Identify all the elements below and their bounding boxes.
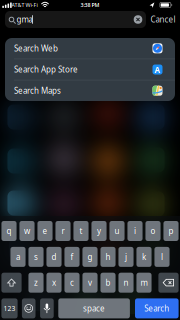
button[interactable]: m xyxy=(136,273,151,293)
button[interactable]: a xyxy=(10,247,26,267)
button[interactable]: Search App Store xyxy=(5,59,175,80)
button[interactable]: d xyxy=(46,247,62,267)
staticText: gma xyxy=(16,14,32,25)
staticText: k xyxy=(142,252,146,262)
staticText: o xyxy=(150,226,155,236)
staticText: q xyxy=(6,226,11,236)
button[interactable]: q xyxy=(1,221,17,241)
staticText: Search xyxy=(144,303,169,314)
staticText: f xyxy=(70,252,73,262)
button[interactable]: b xyxy=(100,273,116,293)
staticText: u xyxy=(114,226,119,236)
button[interactable]: j xyxy=(118,247,134,267)
staticText: h xyxy=(105,252,110,262)
button[interactable]: Search Web xyxy=(5,38,175,58)
staticText: p xyxy=(168,226,173,236)
staticText: a xyxy=(16,252,20,262)
staticText: b xyxy=(105,277,110,288)
button[interactable]: t xyxy=(73,221,89,241)
button[interactable]: 123 xyxy=(1,298,18,318)
staticText: Cancel xyxy=(150,14,175,25)
staticText: w xyxy=(24,226,30,236)
button[interactable]: c xyxy=(64,273,80,293)
staticText: A xyxy=(154,64,160,75)
staticText: space xyxy=(83,303,105,314)
button[interactable]: h xyxy=(100,247,116,267)
staticText: i xyxy=(134,226,136,236)
staticText: y xyxy=(97,226,101,236)
button[interactable]: Dictate xyxy=(40,298,54,318)
button[interactable]: v xyxy=(82,273,98,293)
button[interactable]: p xyxy=(163,221,179,241)
button[interactable]: s xyxy=(28,247,44,267)
button[interactable]: Delete xyxy=(158,273,179,293)
button[interactable]: x xyxy=(46,273,62,293)
button[interactable]: z xyxy=(28,273,44,293)
staticText: s xyxy=(34,252,38,262)
button[interactable]: i xyxy=(127,221,143,241)
button[interactable]: Cancel xyxy=(150,14,175,25)
staticText: AT&T Wi-Fi xyxy=(11,1,37,9)
button[interactable]: k xyxy=(136,247,152,267)
staticText: j xyxy=(125,252,127,262)
button[interactable]: u xyxy=(109,221,125,241)
staticText: Search Maps xyxy=(14,85,61,96)
staticText: l xyxy=(161,252,163,262)
button[interactable]: f xyxy=(64,247,80,267)
staticText: c xyxy=(70,277,74,288)
staticText: x xyxy=(52,277,56,288)
staticText: m xyxy=(140,277,147,288)
button[interactable]: space xyxy=(58,298,130,318)
staticText: n xyxy=(123,277,128,288)
button[interactable]: Shift xyxy=(1,273,22,293)
button[interactable]: y xyxy=(91,221,107,241)
staticText: g xyxy=(87,252,92,262)
staticText: z xyxy=(34,277,38,288)
button[interactable]: w xyxy=(19,221,35,241)
button[interactable]: n xyxy=(118,273,134,293)
button[interactable]: g xyxy=(82,247,98,267)
button[interactable]: Emoji xyxy=(22,298,35,318)
staticText: 3:38 PM xyxy=(80,1,99,9)
staticText: Search Web xyxy=(14,43,58,54)
button[interactable]: Clear text xyxy=(133,14,143,24)
staticText: d xyxy=(51,252,56,262)
staticText: r xyxy=(61,226,64,236)
button[interactable]: l xyxy=(154,247,170,267)
staticText: e xyxy=(42,226,47,236)
staticText: t xyxy=(79,226,82,236)
staticText: Search App Store xyxy=(14,64,78,75)
button[interactable]: Search xyxy=(135,298,179,318)
button[interactable]: r xyxy=(55,221,71,241)
button[interactable]: e xyxy=(37,221,53,241)
button[interactable]: Search Maps xyxy=(5,80,175,101)
staticText: v xyxy=(88,277,92,288)
staticText: 123 xyxy=(3,304,15,313)
button[interactable]: o xyxy=(145,221,161,241)
